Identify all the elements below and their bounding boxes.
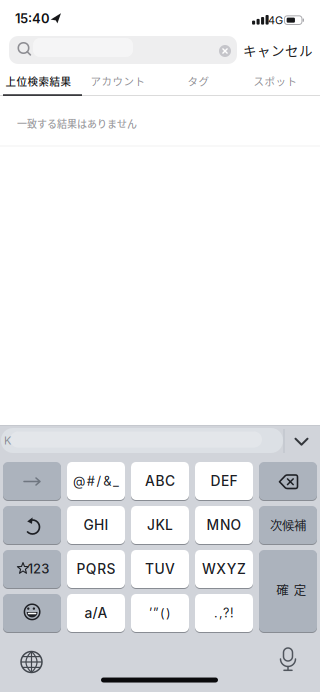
staticText: 15:40	[15, 11, 50, 26]
staticText: MNO	[207, 517, 241, 533]
staticText: PQRS	[76, 561, 116, 577]
staticText: タグ	[187, 73, 209, 89]
staticText: ABC	[145, 473, 175, 489]
staticText: 一致する結果はありません	[17, 116, 137, 131]
staticText: 4G	[268, 13, 283, 27]
staticText: JKL	[147, 517, 173, 533]
staticText: 123	[28, 561, 49, 576]
staticText: 確定	[276, 580, 307, 599]
staticText: WXYZ	[202, 561, 246, 577]
staticText: TUV	[145, 561, 175, 577]
staticText: K	[4, 434, 11, 447]
staticText: GHI	[84, 517, 108, 533]
staticText: キャンセル	[243, 40, 313, 60]
staticText: DEF	[211, 473, 237, 489]
staticText: .,?!	[214, 605, 234, 620]
staticText: a/A	[84, 605, 107, 621]
staticText: アカウント	[90, 73, 145, 89]
staticText: スポット	[253, 73, 297, 89]
staticText: @#/&_	[73, 473, 119, 489]
staticText: ’”()	[149, 605, 171, 620]
staticText: 次候補	[270, 516, 306, 534]
staticText: 上位検索結果	[5, 73, 71, 89]
